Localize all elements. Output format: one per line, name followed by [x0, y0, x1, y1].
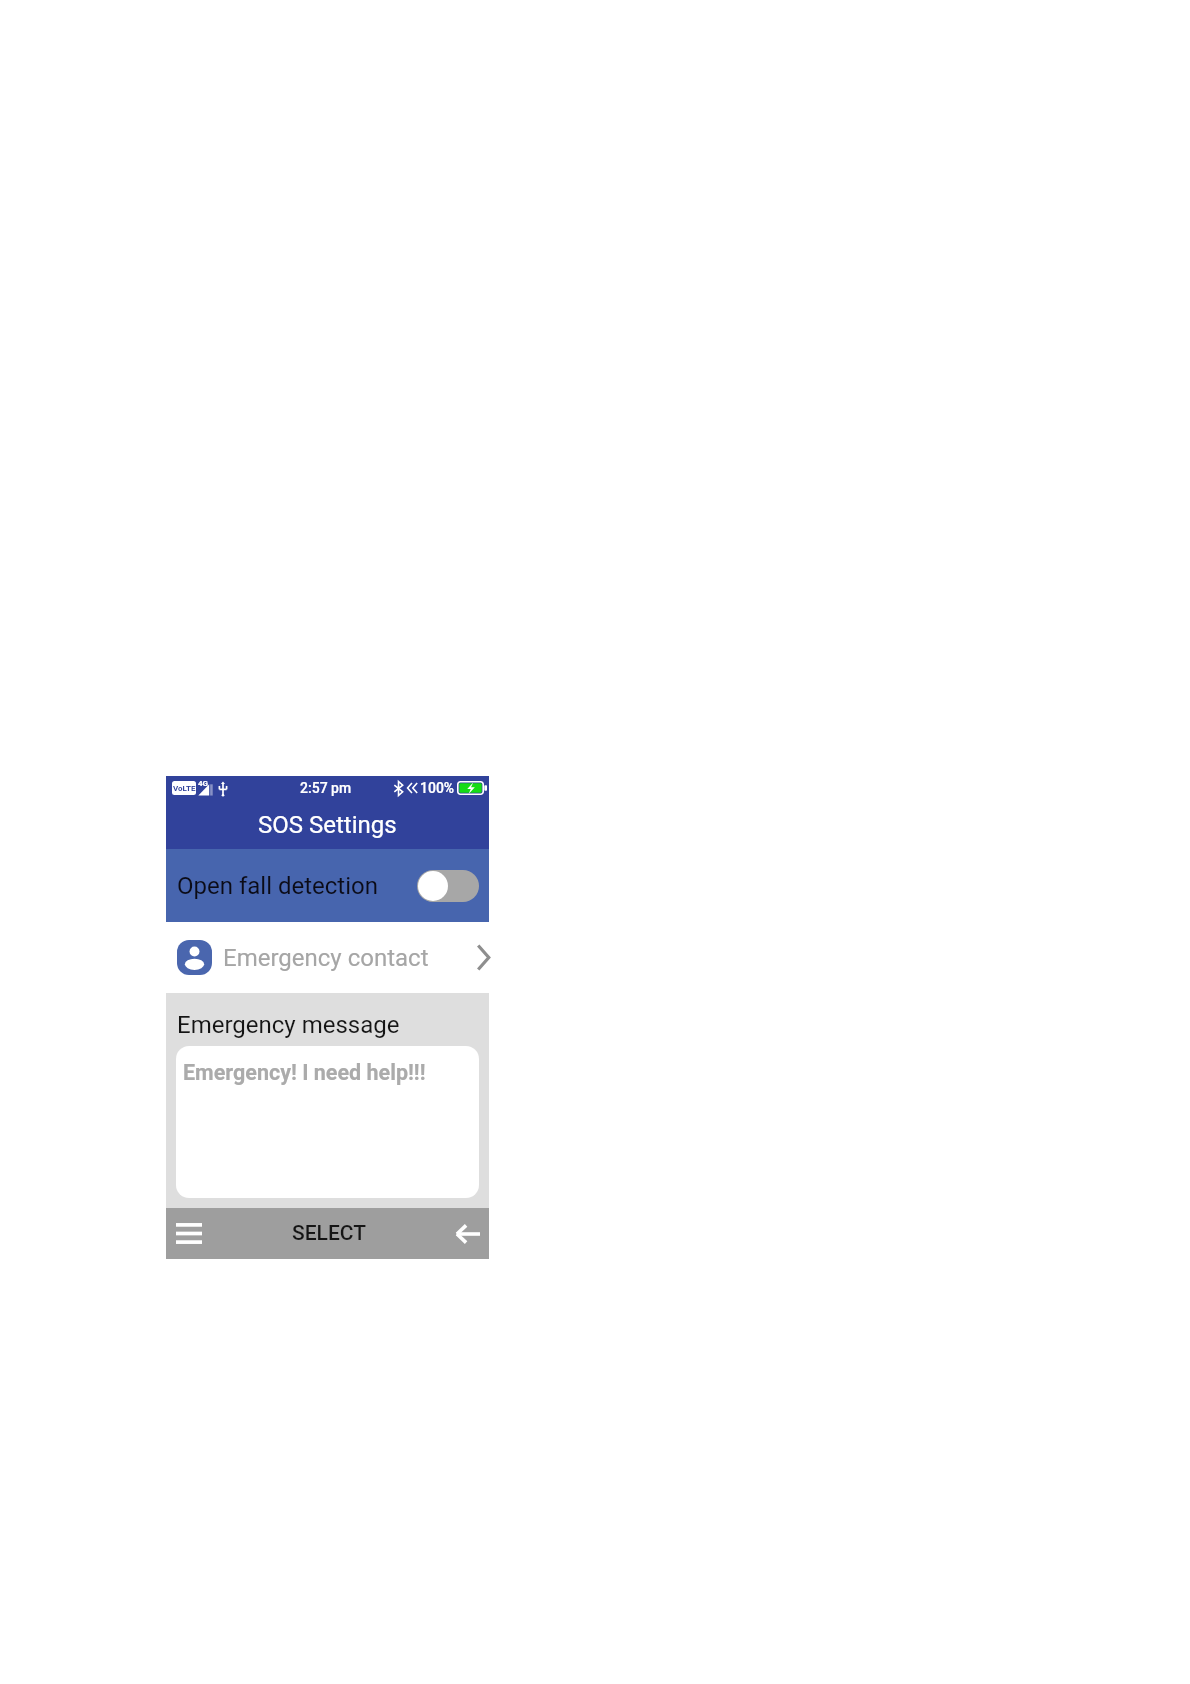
button[interactable]: Toggle fall detection: [417, 870, 479, 902]
button[interactable]: Menu: [166, 1208, 211, 1259]
staticText: SELECT: [292, 1221, 366, 1246]
button[interactable]: Open fall detection: [166, 849, 489, 922]
button[interactable]: SELECT: [211, 1208, 447, 1259]
staticText: 4G: [198, 779, 209, 788]
staticText: 100%: [420, 780, 455, 796]
staticText: 2:57 pm: [300, 780, 352, 796]
button[interactable]: Emergency! I need help!!!: [176, 1046, 479, 1198]
staticText: Emergency contact: [223, 944, 429, 972]
button[interactable]: Emergency contact: [166, 922, 489, 993]
staticText: Open fall detection: [177, 872, 378, 900]
staticText: Emergency message: [177, 1011, 400, 1039]
staticText: VoLTE: [173, 784, 196, 793]
staticText: Emergency! I need help!!!: [183, 1060, 426, 1085]
staticText: SOS Settings: [258, 811, 397, 839]
button[interactable]: Back: [447, 1208, 489, 1259]
